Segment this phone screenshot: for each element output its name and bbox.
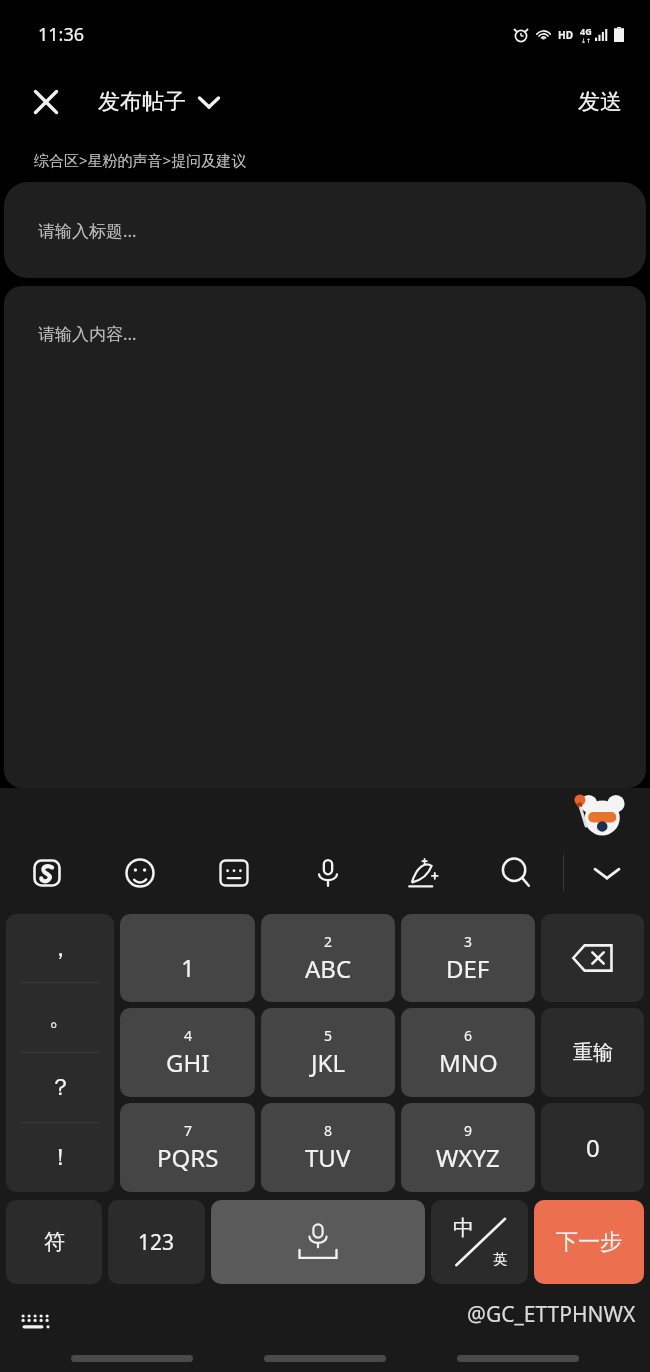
button[interactable]: Switch Chinese English — [431, 1200, 528, 1284]
button[interactable]: 6 — [401, 1008, 535, 1097]
staticText: 请输入标题... — [38, 219, 137, 242]
button[interactable]: Close — [22, 78, 70, 126]
staticText: ， — [49, 934, 72, 963]
staticText: 6 — [464, 1026, 473, 1045]
button[interactable]: Keyboard layout — [187, 836, 281, 910]
staticText: 1 — [181, 951, 195, 984]
button[interactable]: 。 — [6, 983, 114, 1052]
button[interactable]: Search — [469, 836, 563, 910]
button[interactable]: Navigation — [457, 1355, 579, 1362]
staticText: 123 — [138, 1228, 175, 1257]
button[interactable]: 5 — [261, 1008, 395, 1097]
button[interactable]: 重输 — [541, 1008, 644, 1097]
button[interactable]: 8 — [261, 1103, 395, 1192]
staticText: 2 — [324, 932, 333, 951]
staticText: MNO — [439, 1046, 498, 1079]
button[interactable]: 请输入标题... — [4, 182, 646, 278]
button[interactable]: 7 — [120, 1103, 255, 1192]
button[interactable]: Keyboard settings — [12, 1298, 60, 1346]
button[interactable]: 发布帖子 — [94, 84, 224, 120]
staticText: 4G — [580, 25, 592, 37]
staticText: 5 — [324, 1026, 333, 1045]
staticText: 11:36 — [38, 22, 85, 47]
button[interactable]: Sogou input — [0, 836, 93, 910]
staticText: 符 — [44, 1229, 65, 1255]
button[interactable]: Navigation — [71, 1355, 193, 1362]
button[interactable]: 123 — [108, 1200, 205, 1284]
staticText: TUV — [305, 1141, 351, 1174]
button[interactable]: 下一步 — [534, 1200, 644, 1284]
staticText: 中 — [453, 1215, 474, 1241]
button[interactable]: ！ — [6, 1123, 114, 1192]
button[interactable]: Voice input — [281, 836, 375, 910]
staticText: 英 — [493, 1251, 507, 1269]
staticText: 。 — [49, 1003, 72, 1032]
staticText: HD — [558, 28, 573, 42]
button[interactable]: 0 — [541, 1103, 644, 1192]
button[interactable]: ？ — [6, 1053, 114, 1122]
button[interactable]: ， — [6, 914, 114, 982]
staticText: 9 — [464, 1121, 473, 1140]
button[interactable]: 符 — [6, 1200, 102, 1284]
button[interactable]: 4 — [120, 1008, 255, 1097]
button[interactable]: Emoji — [93, 836, 187, 910]
button[interactable]: 综合区>星粉的声音>提问及建议 — [34, 150, 247, 170]
staticText: ↓↑ — [581, 37, 592, 44]
staticText: 发送 — [578, 88, 622, 116]
staticText: ？ — [49, 1073, 72, 1102]
button[interactable]: Hide keyboard — [564, 836, 650, 910]
button[interactable]: 发送 — [572, 82, 628, 122]
staticText: 8 — [324, 1121, 333, 1140]
staticText: 请输入内容... — [38, 322, 137, 345]
button[interactable]: Space — [211, 1200, 425, 1284]
staticText: ！ — [49, 1143, 72, 1172]
button[interactable]: 请输入内容... — [4, 286, 646, 788]
button[interactable]: 3 — [401, 914, 535, 1002]
staticText: ABC — [305, 952, 352, 985]
staticText: 4 — [184, 1026, 193, 1045]
button[interactable]: 2 — [261, 914, 395, 1002]
staticText: DEF — [446, 952, 490, 985]
button[interactable]: 9 — [401, 1103, 535, 1192]
staticText: 下一步 — [556, 1228, 622, 1256]
button[interactable]: 1 — [120, 914, 255, 1002]
staticText: JKL — [311, 1046, 345, 1079]
staticText: 重输 — [573, 1040, 613, 1065]
button[interactable]: Backspace — [541, 914, 644, 1002]
staticText: PQRS — [157, 1141, 219, 1174]
staticText: 3 — [464, 932, 473, 951]
staticText: 7 — [184, 1121, 193, 1140]
staticText: 发布帖子 — [98, 88, 186, 116]
staticText: GHI — [166, 1046, 210, 1079]
button[interactable]: Navigation — [264, 1355, 386, 1362]
staticText: 0 — [586, 1131, 600, 1164]
button[interactable]: Handwriting — [375, 836, 469, 910]
staticText: @GC_ETTPHNWX — [467, 1300, 636, 1329]
staticText: WXYZ — [436, 1141, 500, 1174]
